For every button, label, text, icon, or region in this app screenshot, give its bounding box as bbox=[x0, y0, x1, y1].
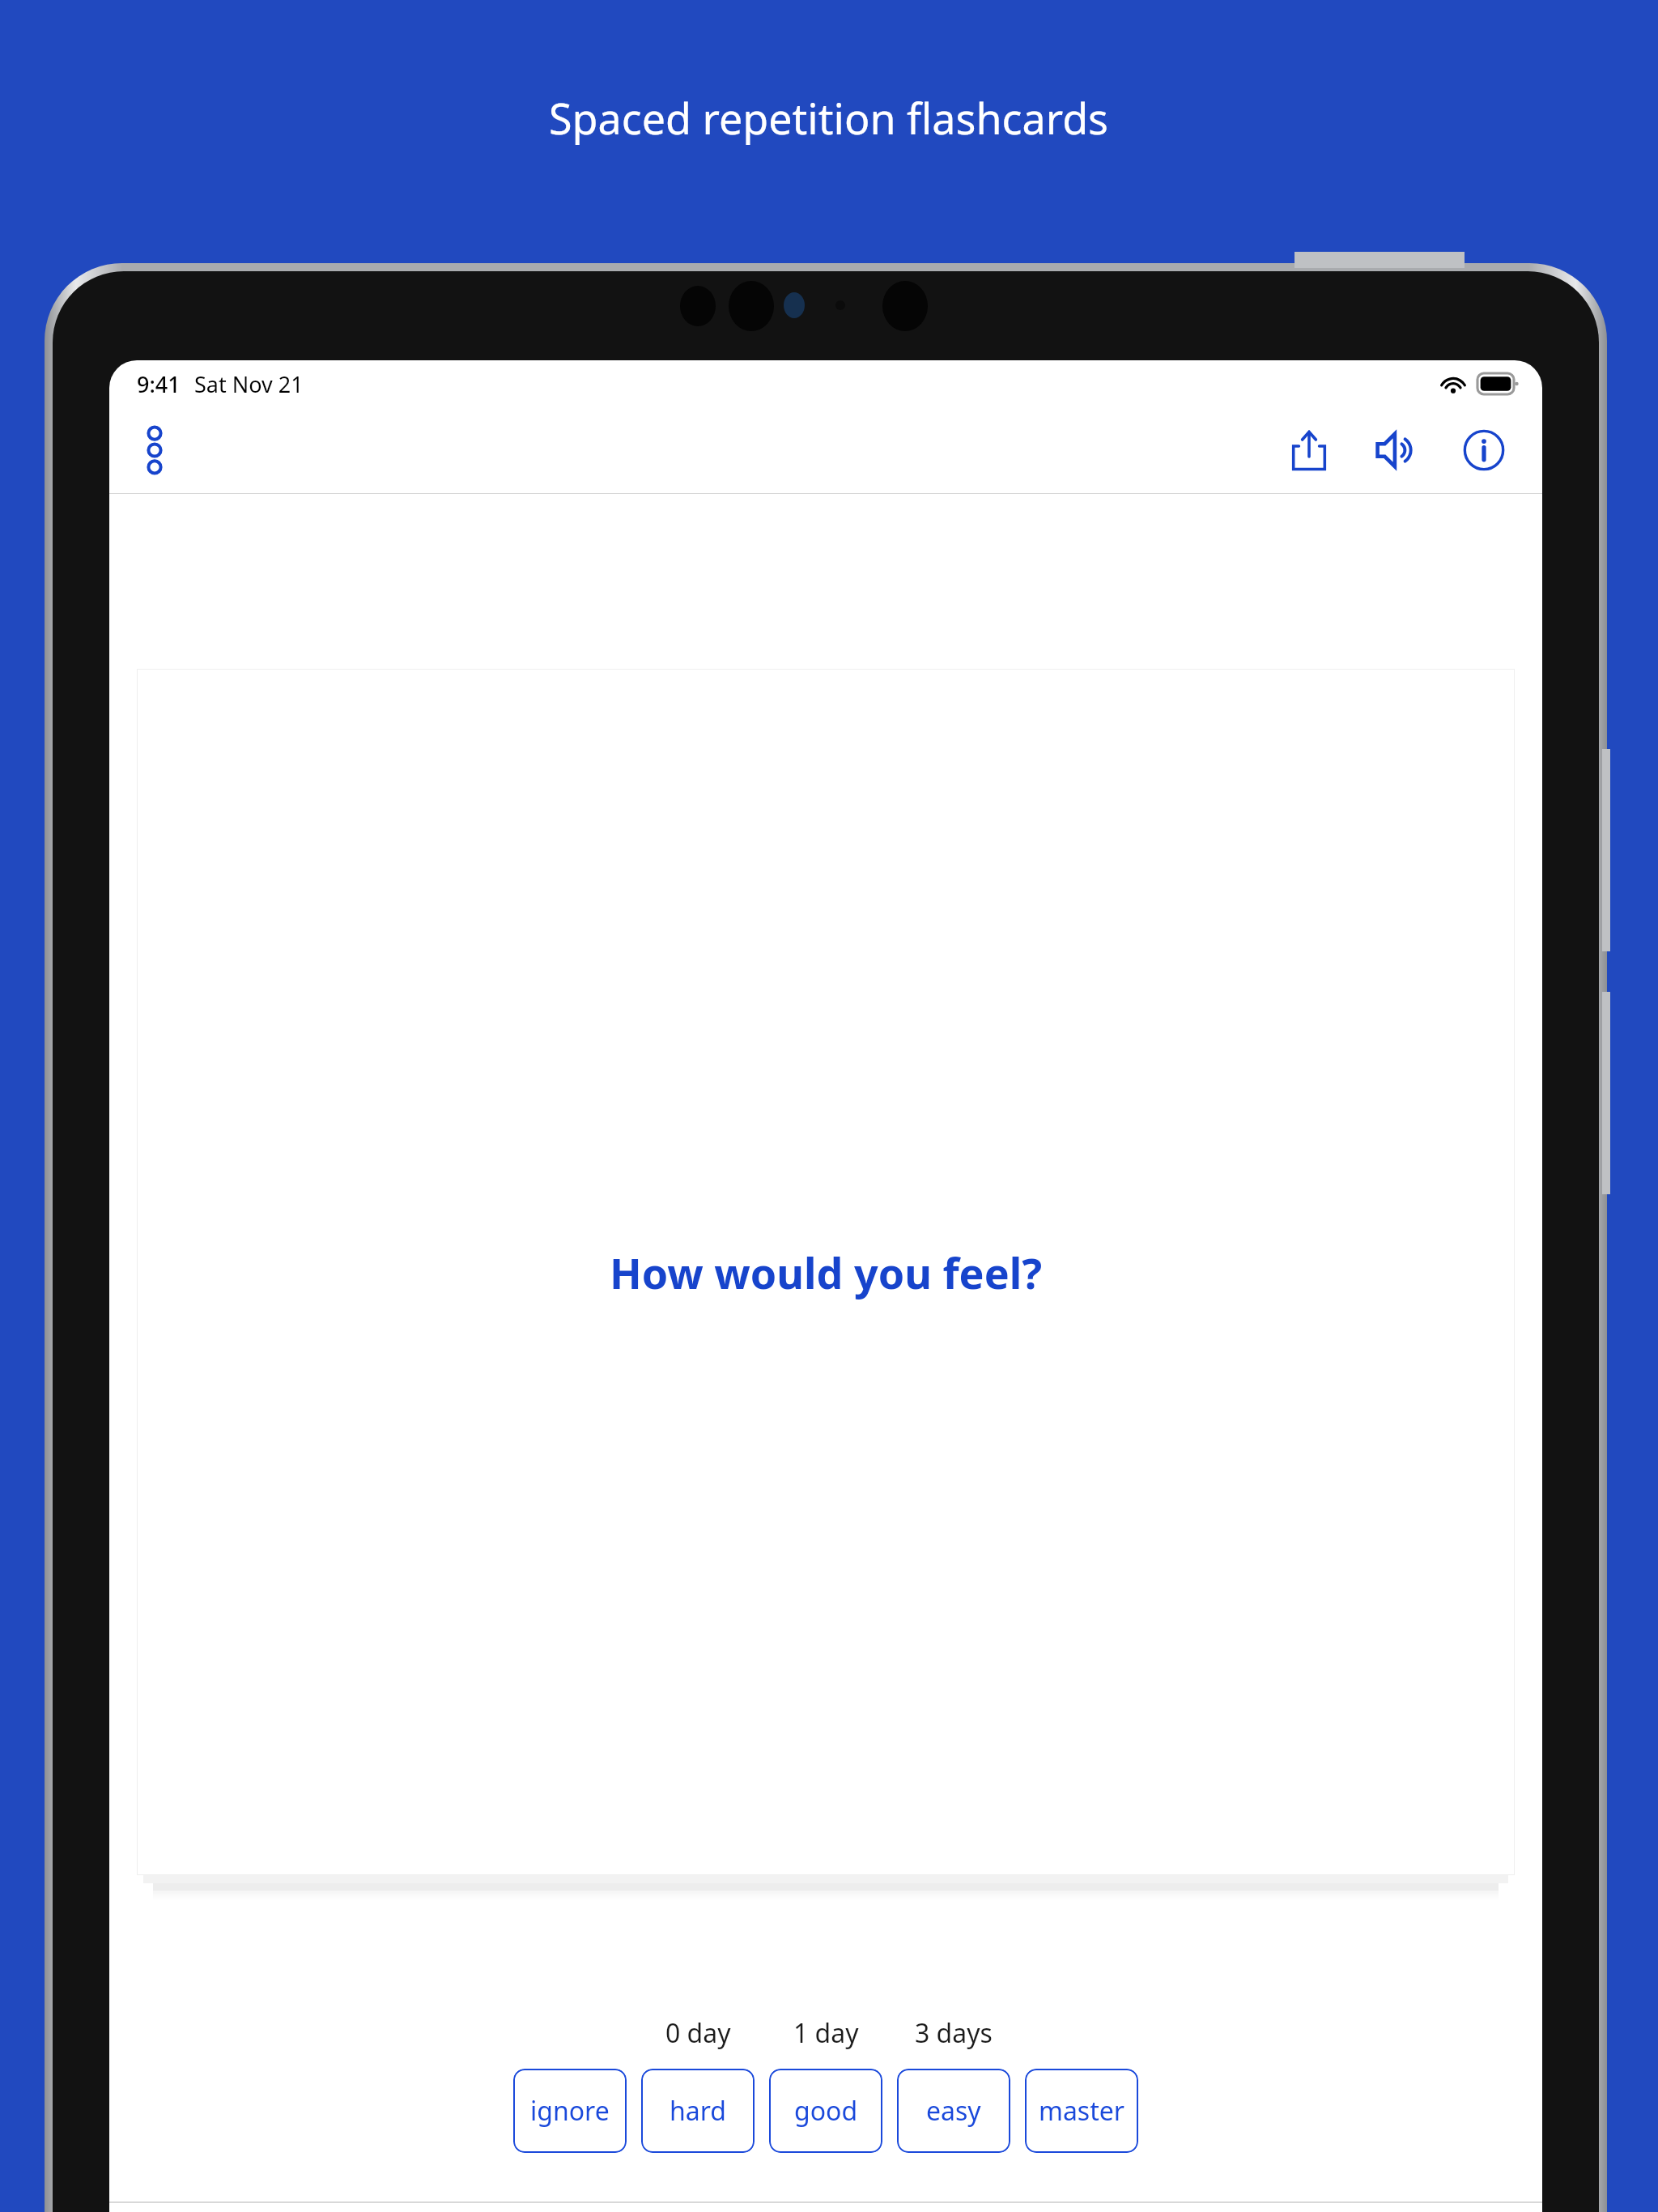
button[interactable]: Dictionary bbox=[109, 2203, 396, 2212]
staticText: 3 days bbox=[915, 2015, 993, 2051]
button[interactable]: How would you feel? bbox=[137, 669, 1515, 1875]
staticText: hard bbox=[670, 2093, 726, 2129]
staticText: Spaced repetition flashcards bbox=[549, 89, 1109, 147]
staticText: easy bbox=[926, 2093, 981, 2129]
staticText: master bbox=[1039, 2093, 1125, 2129]
button[interactable]: master bbox=[1025, 2069, 1138, 2153]
button[interactable]: Menu bbox=[124, 419, 185, 481]
staticText: 9:41 bbox=[137, 369, 181, 399]
button[interactable]: Info bbox=[1447, 413, 1521, 487]
button[interactable]: Today bbox=[969, 2203, 1256, 2212]
staticText: ignore bbox=[530, 2093, 610, 2129]
staticText: good bbox=[794, 2093, 858, 2129]
button[interactable]: hard bbox=[641, 2069, 755, 2153]
button[interactable]: Flashcards bbox=[396, 2203, 682, 2212]
button[interactable]: Pronounce bbox=[1359, 413, 1434, 487]
staticText: 1 day bbox=[793, 2015, 859, 2051]
staticText: How would you feel? bbox=[610, 1244, 1042, 1301]
button[interactable]: good bbox=[769, 2069, 882, 2153]
staticText: 0 day bbox=[665, 2015, 731, 2051]
button[interactable]: More bbox=[1256, 2203, 1542, 2212]
staticText: Sat Nov 21 bbox=[194, 369, 304, 399]
button[interactable]: Bookmark bbox=[682, 2203, 969, 2212]
button[interactable]: ignore bbox=[513, 2069, 627, 2153]
button[interactable]: easy bbox=[897, 2069, 1010, 2153]
button[interactable]: Share bbox=[1272, 413, 1346, 487]
